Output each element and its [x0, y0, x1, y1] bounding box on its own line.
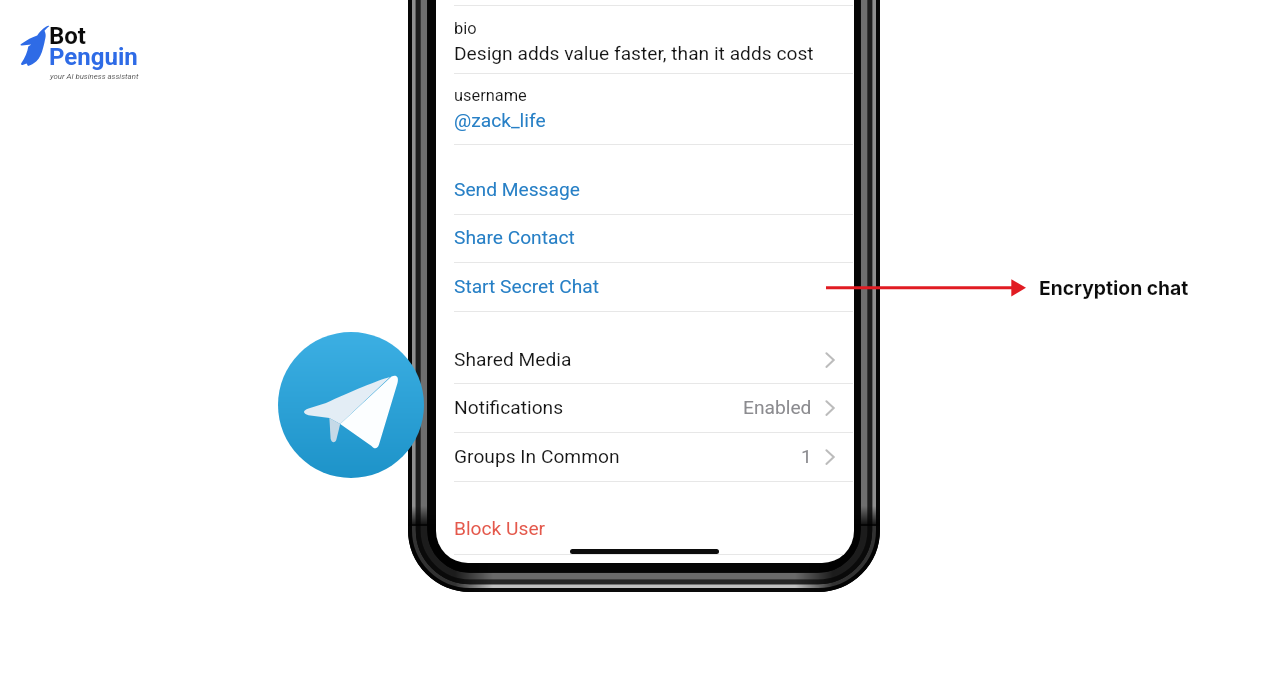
staticText: Encryption chat	[1039, 276, 1189, 299]
button[interactable]: Groups In Common	[436, 432, 854, 481]
button[interactable]: Telegram	[278, 332, 424, 478]
staticText: Start Secret Chat	[454, 275, 600, 298]
button[interactable]: Notifications	[436, 383, 854, 432]
staticText: bio	[454, 19, 477, 38]
staticText: Groups In Common	[454, 445, 620, 468]
button[interactable]: Shared Media	[436, 335, 854, 384]
button[interactable]: Share Contact	[436, 213, 854, 262]
other: Open Groups In Common	[825, 447, 837, 467]
staticText: @zack_life	[454, 109, 546, 132]
staticText: Bot	[49, 22, 86, 50]
staticText: Notifications	[454, 396, 564, 419]
staticText: username	[454, 86, 527, 105]
staticText: Enabled	[743, 396, 812, 419]
other: Open Shared Media	[825, 350, 837, 370]
staticText: Shared Media	[454, 348, 572, 371]
other: Open Notifications	[825, 398, 837, 418]
staticText: Send Message	[454, 178, 580, 201]
staticText: Penguin	[49, 43, 138, 71]
button[interactable]: Send Message	[436, 165, 854, 214]
button[interactable]: Start Secret Chat	[436, 262, 854, 311]
button[interactable]: Encryption chat	[1039, 274, 1189, 301]
staticText: 1	[801, 445, 812, 468]
staticText: Block User	[454, 517, 546, 540]
staticText: Design adds value faster, than it adds c…	[454, 42, 814, 65]
button[interactable]: Block User	[436, 504, 854, 553]
staticText: your AI business assistant	[50, 72, 139, 81]
staticText: Share Contact	[454, 226, 575, 249]
